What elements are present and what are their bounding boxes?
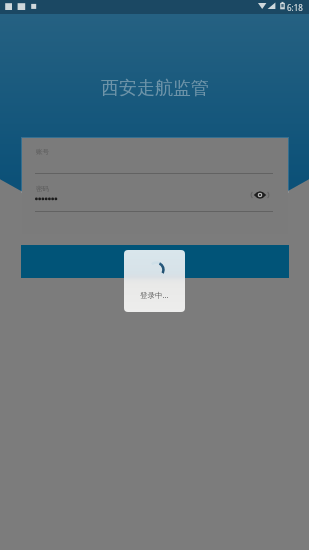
staticText: 西安走航监管 bbox=[101, 77, 209, 100]
staticText: 账号 bbox=[36, 148, 49, 156]
button[interactable]: 登录 bbox=[21, 245, 289, 278]
staticText: 登录中... bbox=[140, 290, 169, 300]
staticText: 6:18 bbox=[287, 2, 303, 13]
button[interactable]: Show password bbox=[253, 188, 267, 202]
staticText: 密码 bbox=[36, 185, 49, 193]
